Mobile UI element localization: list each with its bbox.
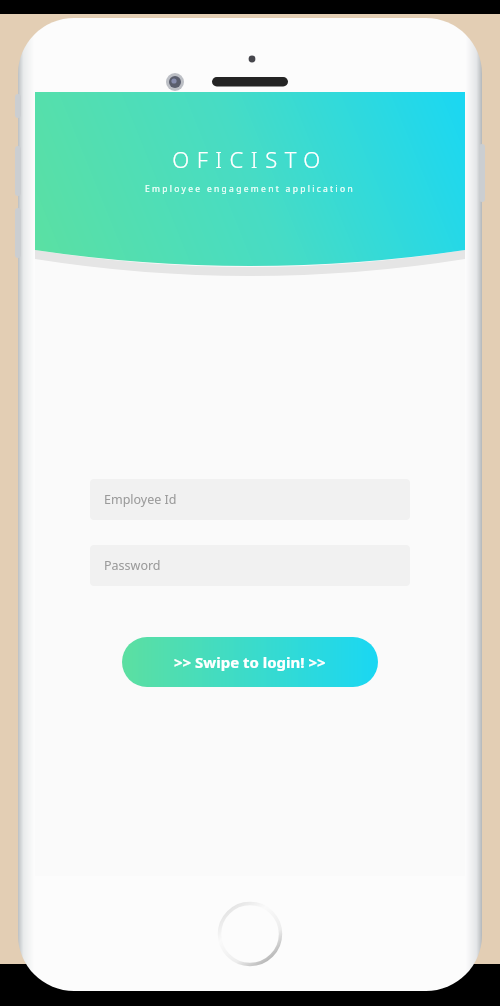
staticText: OFICISTO [172, 144, 328, 174]
staticText: >> Swipe to login! >> [174, 652, 326, 672]
staticText: Employee engagement application [145, 183, 355, 195]
button[interactable]: >> Swipe to login! >> [122, 637, 378, 687]
button[interactable]: Password [90, 545, 410, 586]
staticText: Employee Id [104, 491, 177, 508]
button[interactable]: Employee Id [90, 479, 410, 520]
staticText: Password [104, 557, 161, 574]
